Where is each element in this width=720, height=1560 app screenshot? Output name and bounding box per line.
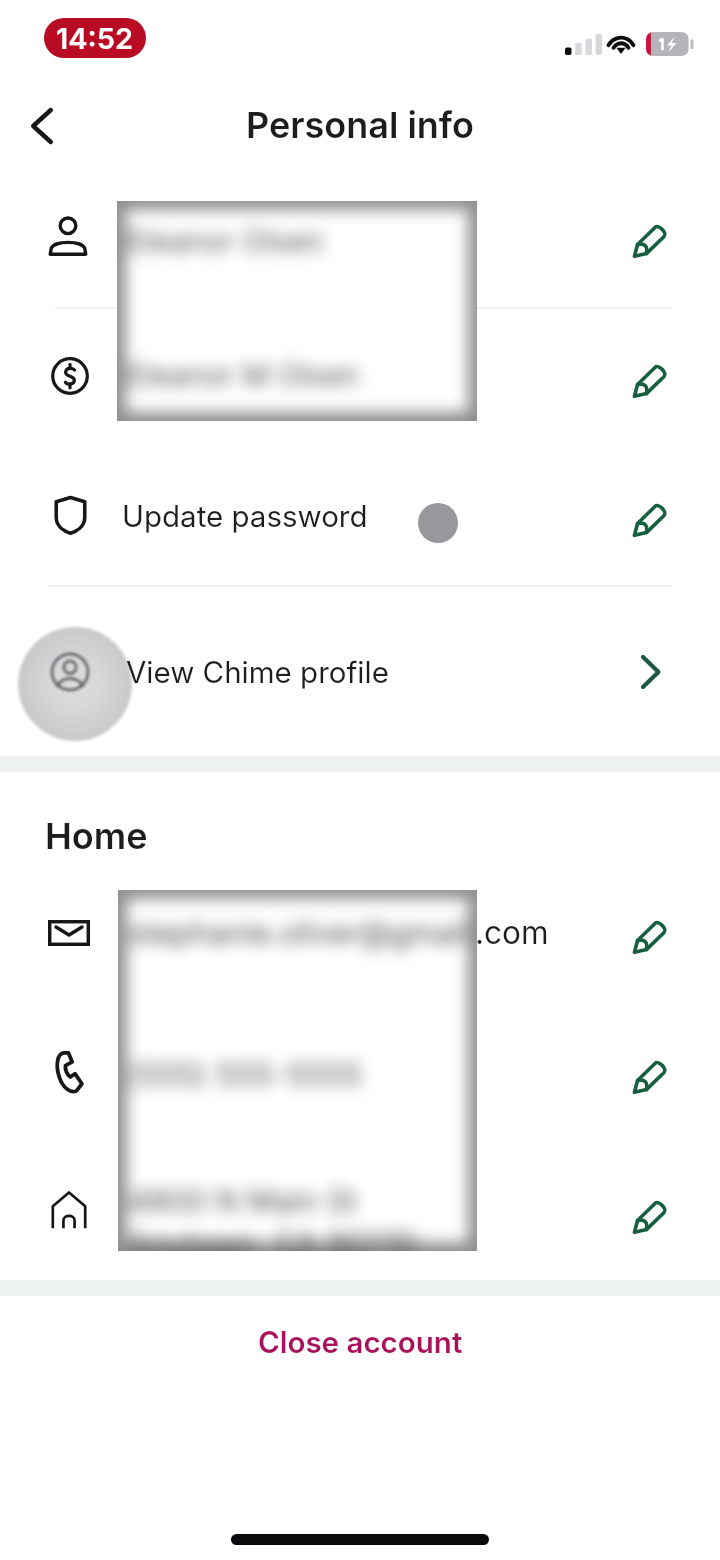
button[interactable]: Edit home address bbox=[0, 1150, 720, 1280]
button[interactable]: View Chime profile bbox=[0, 610, 720, 740]
button[interactable]: Edit legal name bbox=[0, 180, 720, 308]
staticText: Eleanor M Olsen bbox=[127, 357, 360, 393]
staticText: Update password bbox=[122, 498, 368, 534]
button[interactable]: Edit preferred name bbox=[0, 309, 720, 439]
button[interactable]: Edit email bbox=[0, 870, 720, 1000]
staticText: .com bbox=[475, 913, 549, 951]
button[interactable]: Edit phone number bbox=[0, 1010, 720, 1140]
staticText: stephanie.oliver@gmail bbox=[128, 914, 469, 952]
button[interactable]: Back bbox=[6, 90, 78, 162]
button[interactable]: Update password bbox=[0, 470, 720, 585]
staticText: 14:52 bbox=[56, 21, 134, 56]
staticText: 4800 N Main St Anytown, CA 90210 bbox=[128, 1182, 417, 1251]
staticText: Eleanor Olsen bbox=[127, 223, 324, 259]
staticText: Personal info bbox=[246, 103, 474, 147]
staticText: Close account bbox=[258, 1324, 463, 1360]
staticText: View Chime profile bbox=[126, 654, 389, 690]
staticText: (555) 555-5555 bbox=[128, 1056, 363, 1094]
button[interactable]: Close account bbox=[0, 1310, 720, 1374]
staticText: Home bbox=[45, 814, 148, 858]
